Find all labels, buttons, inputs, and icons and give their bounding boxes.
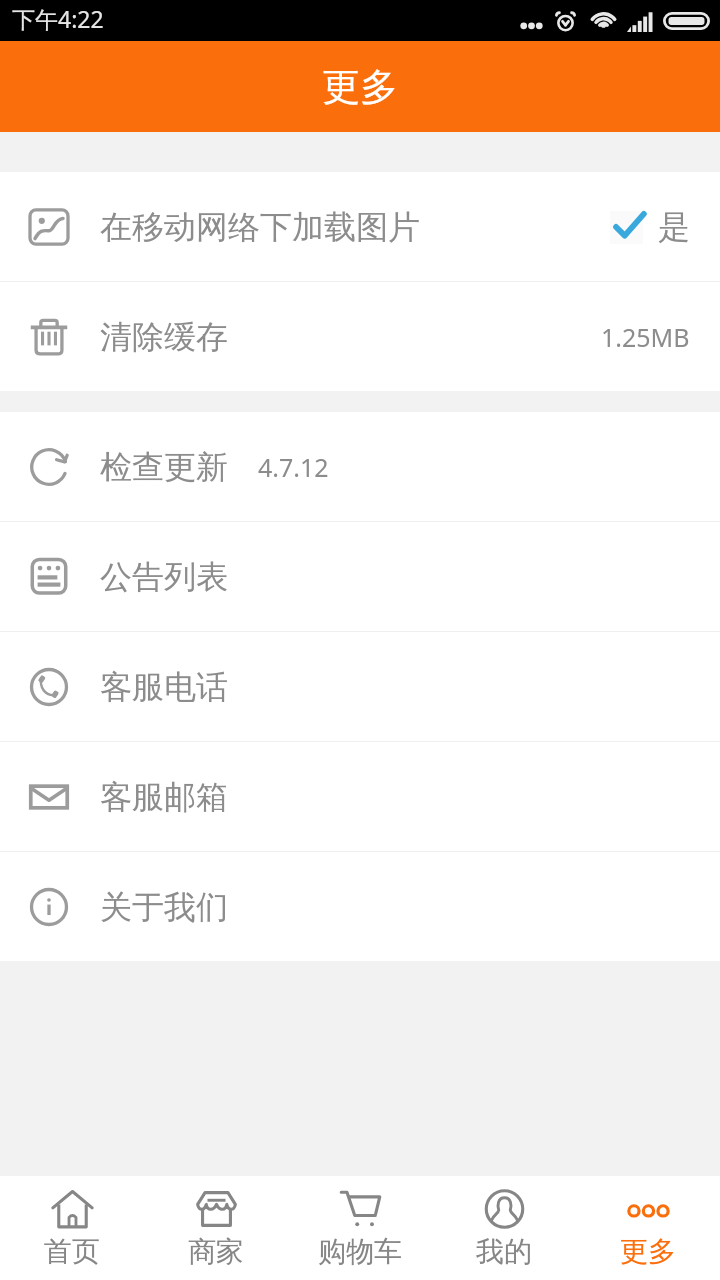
staticText: 是: [658, 207, 690, 247]
button[interactable]: 在移动网络下加载图片: [0, 172, 720, 281]
staticText: 商家: [188, 1234, 244, 1269]
button[interactable]: 购物车: [288, 1176, 432, 1280]
staticText: 客服邮箱: [100, 777, 228, 817]
button[interactable]: 清除缓存: [0, 282, 720, 391]
staticText: 1.25MB: [601, 320, 690, 354]
staticText: 公告列表: [100, 557, 228, 597]
button[interactable]: 客服邮箱: [0, 742, 720, 851]
button[interactable]: 公告列表: [0, 522, 720, 631]
staticText: 首页: [44, 1234, 100, 1269]
button[interactable]: 我的: [432, 1176, 576, 1280]
button[interactable]: 客服电话: [0, 632, 720, 741]
staticText: 4.7.12: [258, 450, 329, 484]
button[interactable]: Toggle load images on mobile network: [610, 211, 643, 244]
button[interactable]: 检查更新: [0, 412, 720, 521]
staticText: 购物车: [318, 1234, 402, 1269]
staticText: 更多: [322, 63, 398, 111]
staticText: 下午4:22: [12, 3, 104, 34]
staticText: 客服电话: [100, 667, 228, 707]
staticText: 在移动网络下加载图片: [100, 207, 420, 247]
staticText: 清除缓存: [100, 317, 228, 357]
staticText: 关于我们: [100, 887, 228, 927]
staticText: 更多: [620, 1234, 676, 1269]
staticText: 我的: [476, 1234, 532, 1269]
button[interactable]: 首页: [0, 1176, 144, 1280]
button[interactable]: 商家: [144, 1176, 288, 1280]
button[interactable]: 更多: [576, 1176, 720, 1280]
staticText: 检查更新: [100, 447, 228, 487]
button[interactable]: 关于我们: [0, 852, 720, 961]
